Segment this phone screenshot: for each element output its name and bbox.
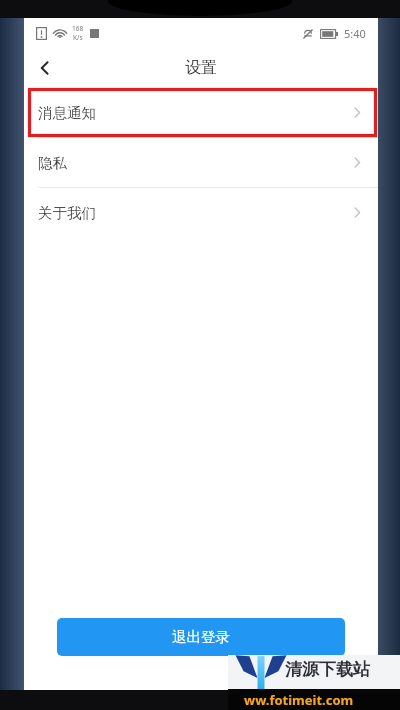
staticText: 隐私 <box>38 154 67 172</box>
staticText: 关于我们 <box>38 204 96 222</box>
staticText: 168 <box>72 24 84 33</box>
staticText: 退出登录 <box>172 628 230 646</box>
staticText: ww.fotimeit.com <box>244 691 354 709</box>
button[interactable]: Back <box>24 48 66 88</box>
button[interactable]: 消息通知 <box>24 88 378 137</box>
staticText: 清源下载站 <box>285 659 370 680</box>
staticText: 5:40 <box>344 26 366 41</box>
button[interactable]: 退出登录 <box>57 618 345 656</box>
button[interactable]: 关于我们 <box>24 188 378 237</box>
button[interactable]: 隐私 <box>24 138 378 187</box>
staticText: 消息通知 <box>38 104 96 122</box>
staticText: 设置 <box>185 58 217 78</box>
staticText: K/s <box>73 33 83 42</box>
